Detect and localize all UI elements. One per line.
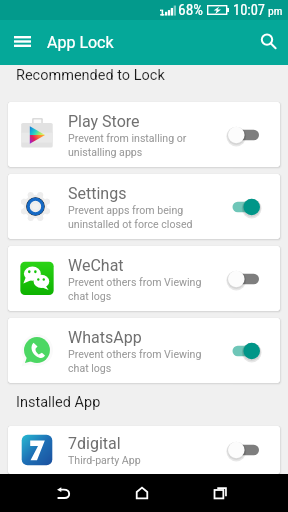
button[interactable]: Back <box>24 474 102 512</box>
button[interactable]: Lock disabled <box>207 102 280 167</box>
staticText: Prevent from installing or unistalling a… <box>68 132 187 158</box>
button[interactable]: Settings <box>8 174 280 239</box>
button[interactable]: Play Store <box>8 102 280 167</box>
button[interactable]: Open navigation menu <box>8 27 36 55</box>
staticText: Recommended to Lock <box>16 67 165 84</box>
staticText: 68% <box>178 1 204 19</box>
button[interactable]: Recent apps <box>181 474 260 512</box>
staticText: Third-party App <box>68 454 141 466</box>
staticText: Prevent apps from being uninstalled ot f… <box>68 204 193 230</box>
staticText: Play Store <box>68 112 140 131</box>
button[interactable]: Lock enabled <box>207 318 280 383</box>
staticText: pm <box>268 4 283 17</box>
button[interactable]: Lock enabled <box>207 174 280 239</box>
button[interactable]: WeChat <box>8 246 280 311</box>
staticText: Installed App <box>16 394 101 411</box>
button[interactable]: Home <box>102 474 181 512</box>
button[interactable]: Lock disabled <box>207 426 280 474</box>
staticText: WeChat <box>68 256 124 275</box>
staticText: App Lock <box>47 33 114 52</box>
button[interactable]: WhatsApp <box>8 318 280 383</box>
button[interactable]: Search <box>255 28 283 56</box>
staticText: Prevent others from Viewing chat logs <box>68 276 202 302</box>
staticText: WhatsApp <box>68 328 142 347</box>
staticText: 10:07 <box>233 2 266 19</box>
staticText: 7digital <box>68 434 121 453</box>
staticText: Settings <box>68 184 127 203</box>
button[interactable]: Lock disabled <box>207 246 280 311</box>
button[interactable]: 7digital <box>8 426 280 474</box>
staticText: Prevent others from Viewing chat logs <box>68 348 202 374</box>
